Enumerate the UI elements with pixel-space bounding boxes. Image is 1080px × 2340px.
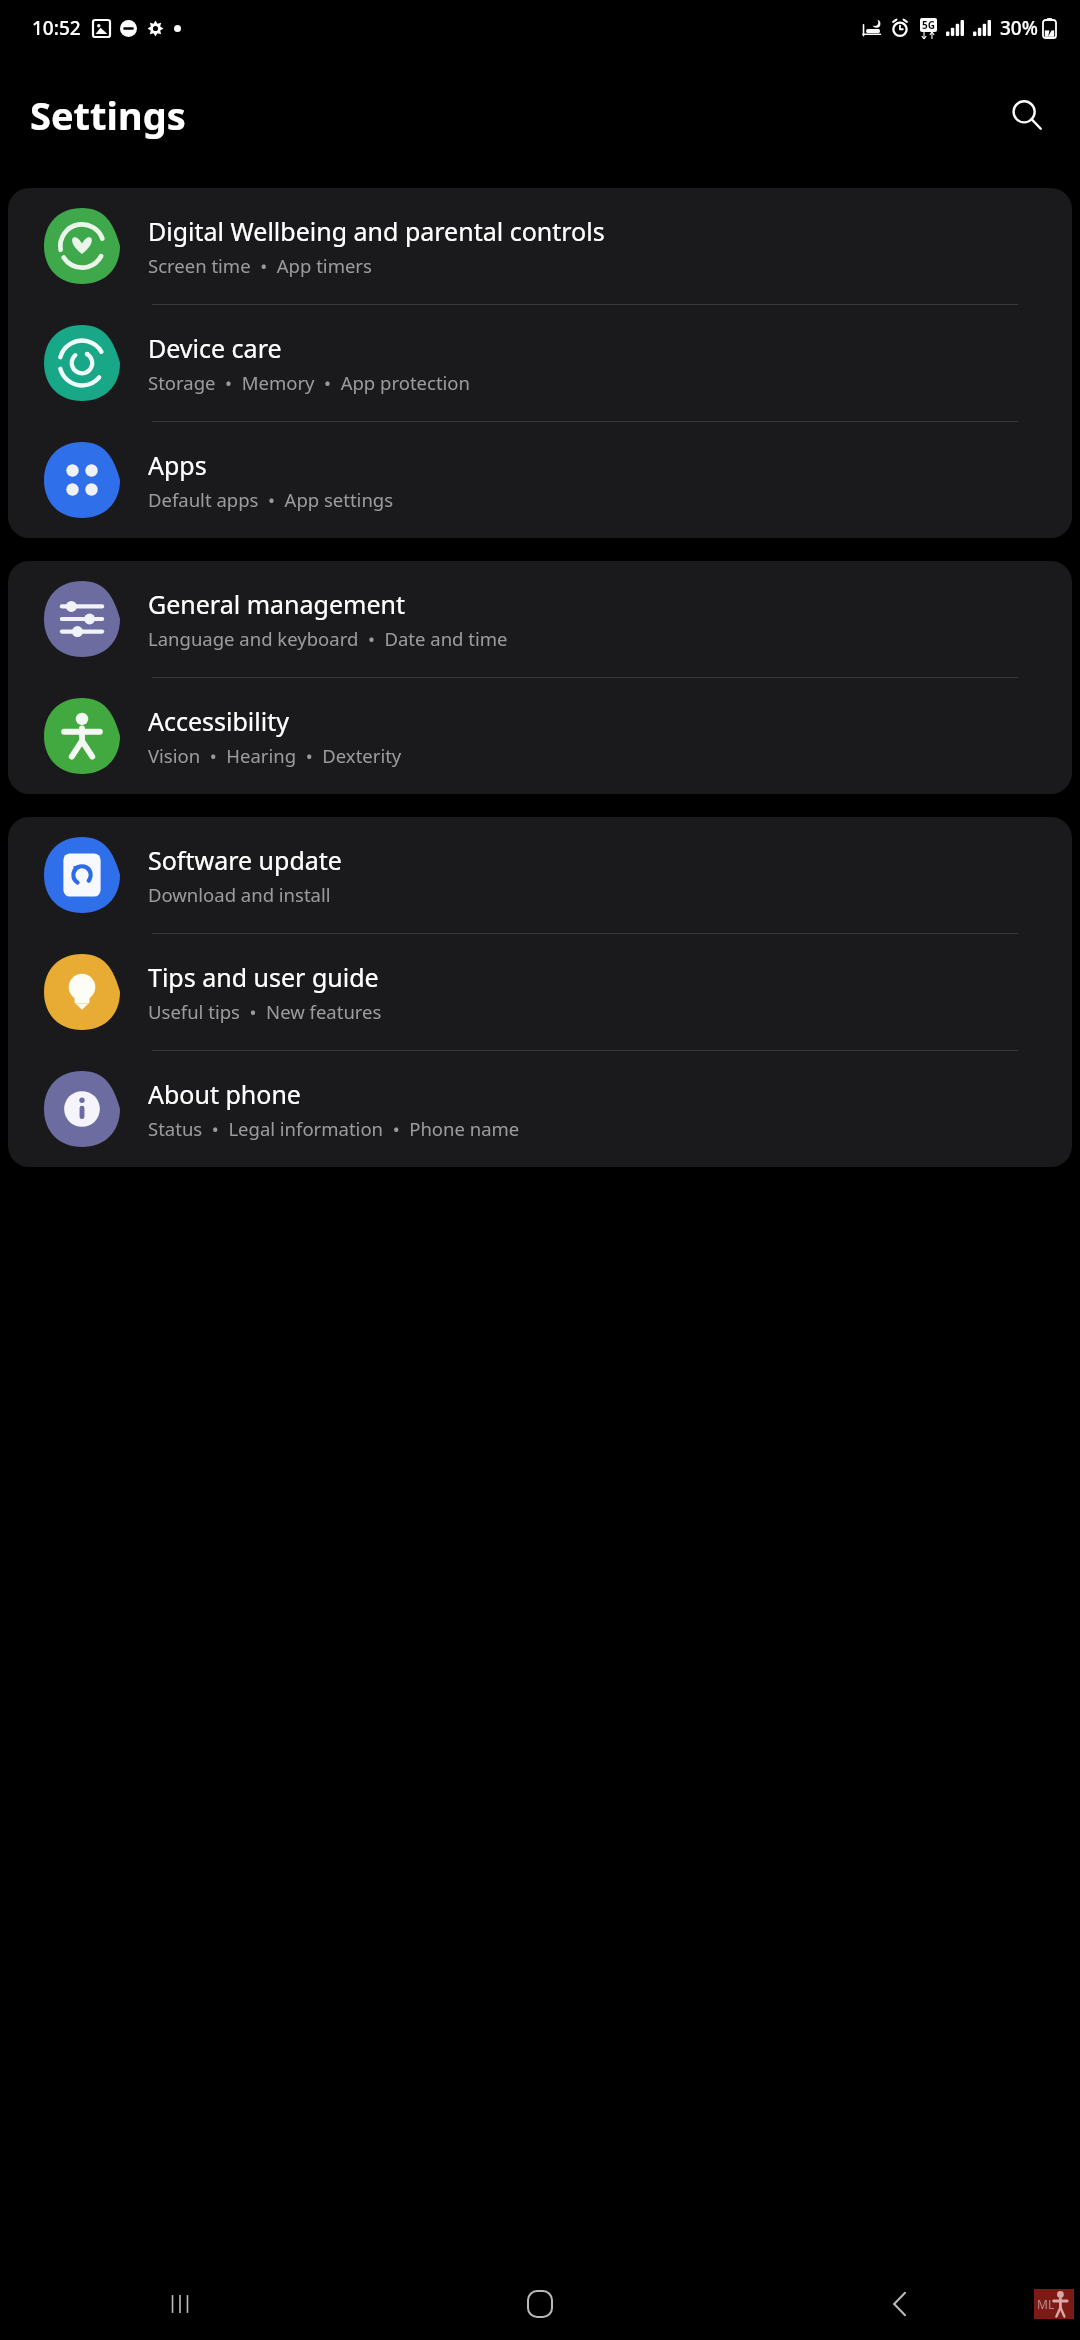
staticText: Tips and user guide: [148, 960, 379, 994]
staticText: ML: [1037, 2296, 1055, 2312]
button[interactable]: General management: [8, 561, 1072, 677]
button[interactable]: Digital Wellbeing and parental controls: [8, 188, 1072, 304]
staticText: Screen time • App timers: [148, 253, 372, 278]
button[interactable]: Back: [720, 2268, 1080, 2340]
button[interactable]: Tips and user guide: [8, 934, 1072, 1050]
staticText: Useful tips • New features: [148, 999, 382, 1024]
staticText: Apps: [148, 448, 207, 482]
staticText: Download and install: [148, 882, 331, 907]
button[interactable]: About phone: [8, 1051, 1072, 1167]
staticText: 5G: [922, 18, 935, 32]
staticText: Default apps • App settings: [148, 487, 394, 512]
staticText: Status • Legal information • Phone name: [148, 1116, 520, 1141]
staticText: Settings: [30, 89, 186, 141]
button[interactable]: Home: [360, 2268, 720, 2340]
staticText: Vision • Hearing • Dexterity: [148, 743, 402, 768]
staticText: About phone: [148, 1077, 301, 1111]
staticText: Accessibility: [148, 704, 289, 738]
staticText: Storage • Memory • App protection: [148, 370, 470, 395]
button[interactable]: Device care: [8, 305, 1072, 421]
button[interactable]: Apps: [8, 422, 1072, 538]
staticText: Digital Wellbeing and parental controls: [148, 214, 605, 248]
staticText: 30%: [1000, 15, 1038, 41]
staticText: Device care: [148, 331, 282, 365]
button[interactable]: Accessibility: [8, 678, 1072, 794]
button[interactable]: Software update: [8, 817, 1072, 933]
button[interactable]: Search: [996, 84, 1058, 146]
staticText: General management: [148, 587, 405, 621]
button[interactable]: Recent apps: [0, 2268, 360, 2340]
staticText: 10:52: [32, 15, 81, 41]
staticText: Software update: [148, 843, 342, 877]
staticText: Language and keyboard • Date and time: [148, 626, 508, 651]
